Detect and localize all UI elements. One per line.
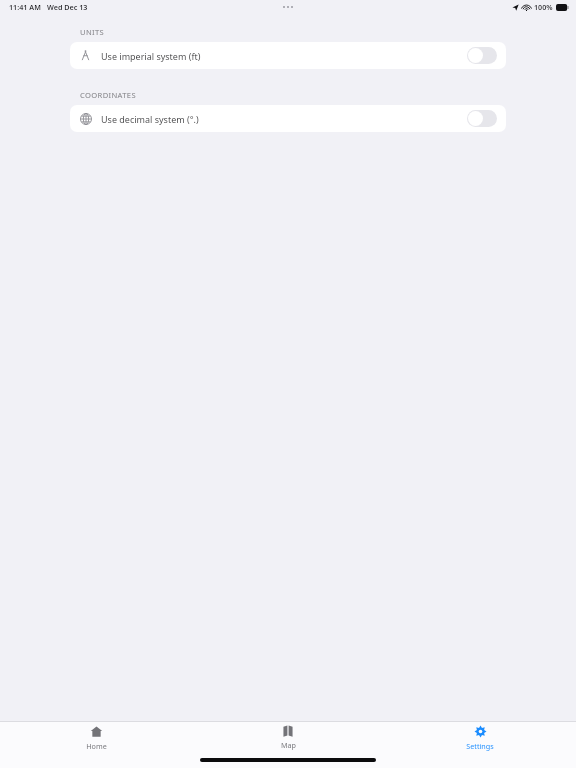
- button[interactable]: Home: [0, 722, 192, 753]
- staticText: 11:41 AM: [9, 2, 41, 12]
- button[interactable]: Map: [192, 722, 384, 753]
- staticText: 100%: [534, 2, 553, 12]
- staticText: Home: [86, 741, 107, 751]
- button[interactable]: Toggle: [467, 110, 497, 127]
- button[interactable]: Settings: [384, 722, 576, 753]
- staticText: COORDINATES: [80, 90, 136, 100]
- button[interactable]: Toggle: [467, 47, 497, 64]
- button[interactable]: Use decimal system (°.): [70, 105, 506, 132]
- staticText: UNITS: [80, 27, 105, 37]
- button[interactable]: Use imperial system (ft): [70, 42, 506, 69]
- staticText: Settings: [466, 741, 494, 751]
- staticText: Use imperial system (ft): [101, 50, 201, 62]
- staticText: Use decimal system (°.): [101, 113, 199, 125]
- staticText: Map: [281, 740, 296, 750]
- staticText: Wed Dec 13: [47, 2, 88, 12]
